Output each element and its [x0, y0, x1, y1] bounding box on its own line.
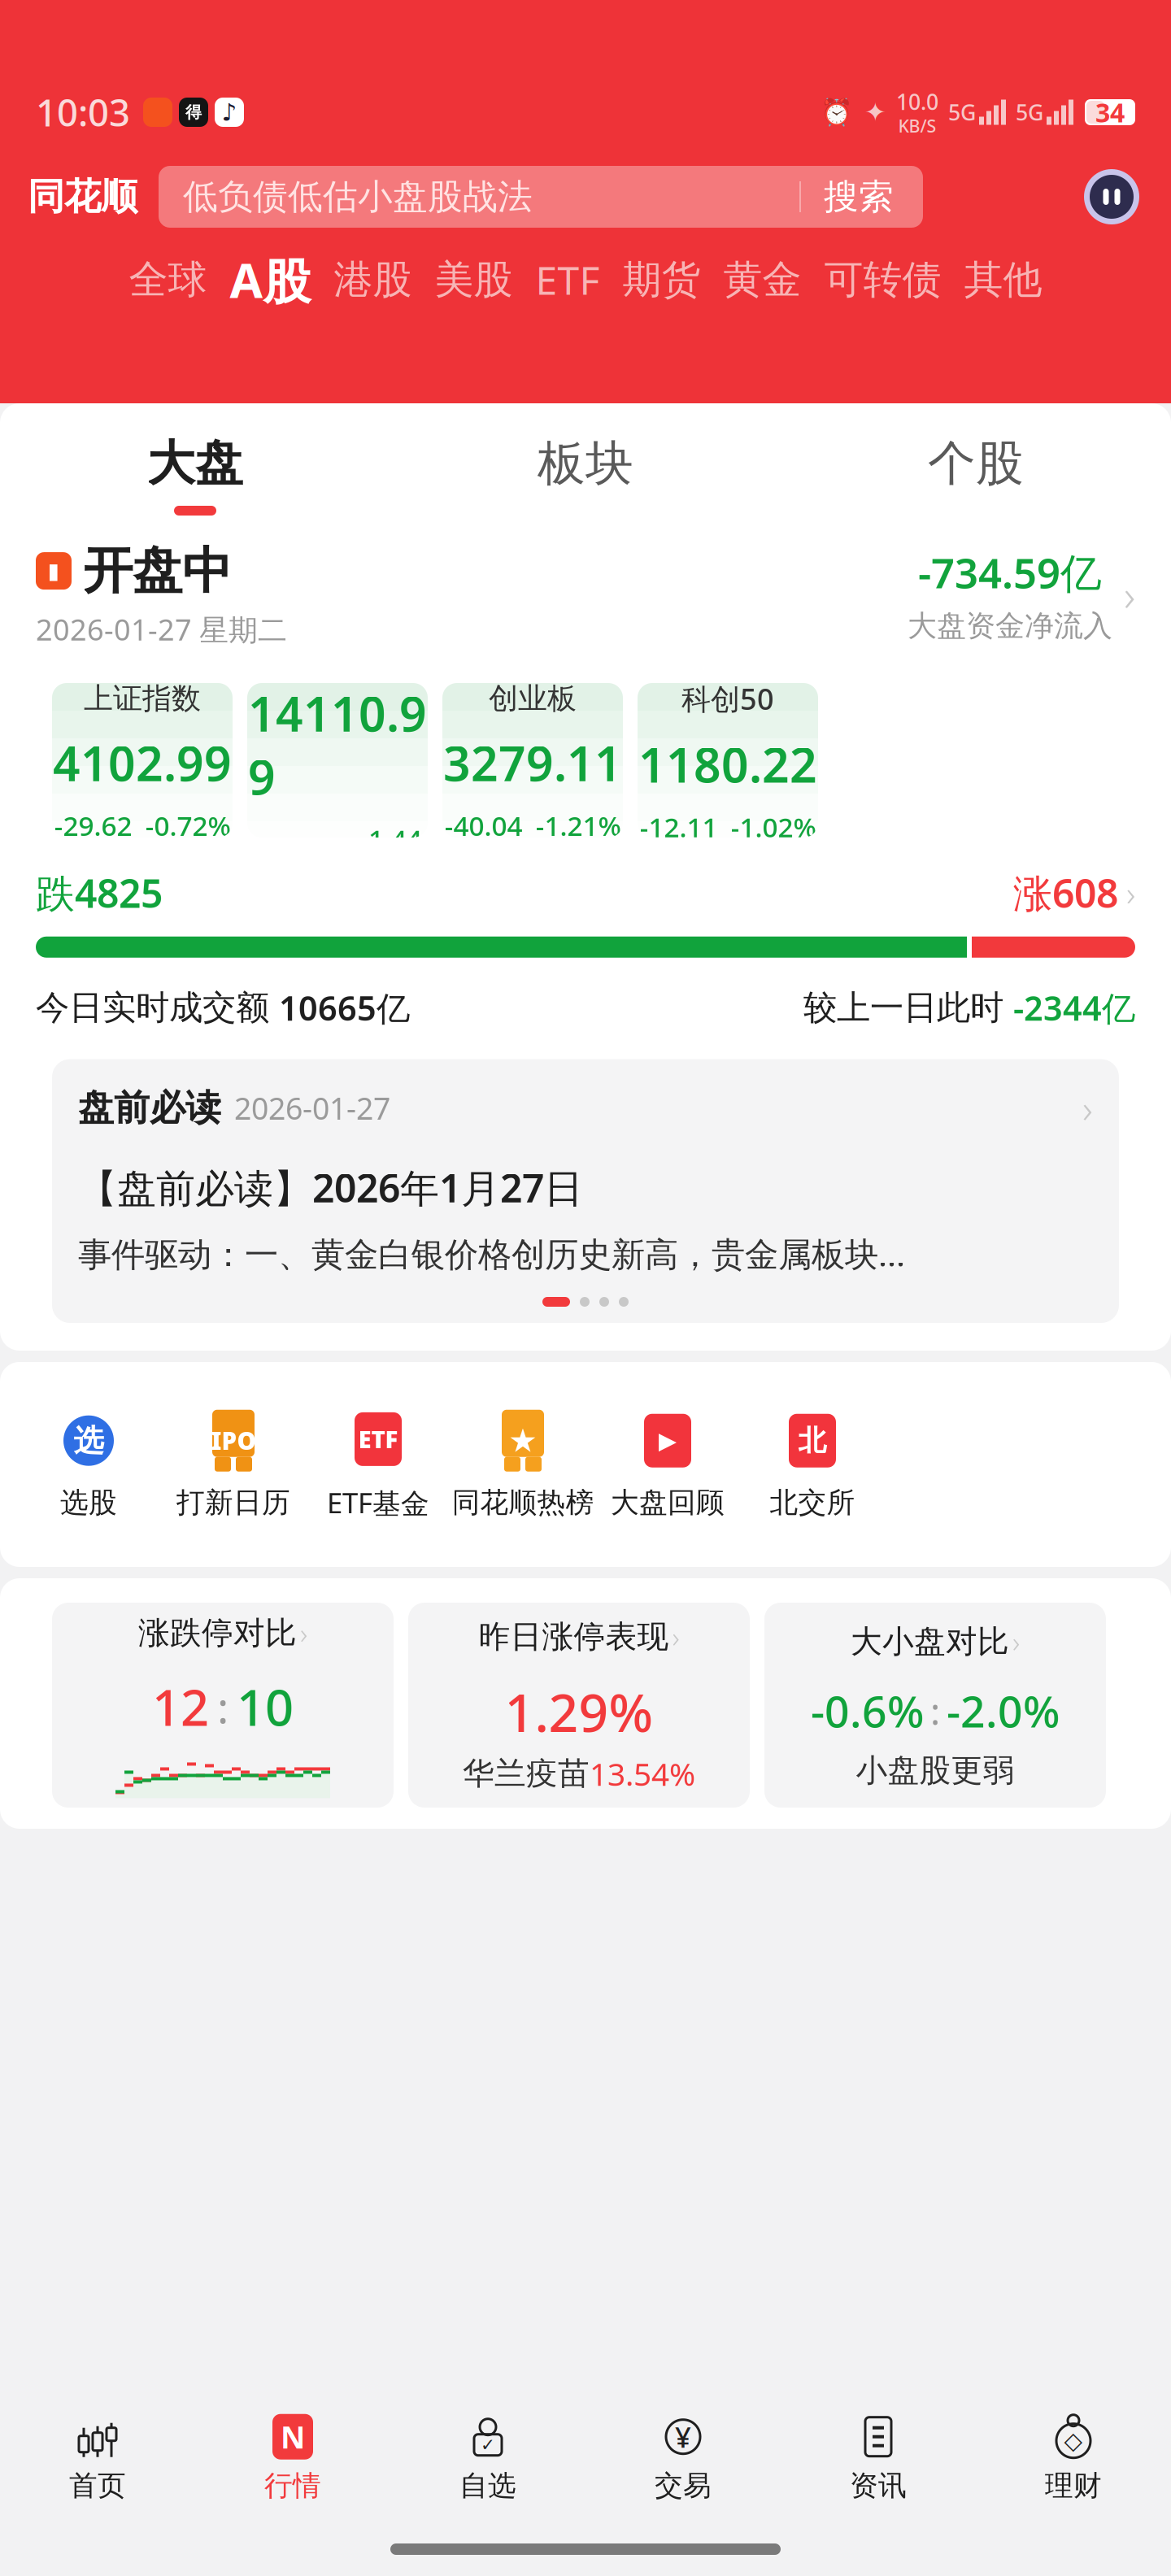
- button[interactable]: ▮: [0, 525, 1171, 664]
- staticText: 上证指数: [84, 680, 201, 716]
- button[interactable]: 昨日涨停表现: [408, 1603, 750, 1808]
- staticText: KB/S: [898, 114, 936, 137]
- staticText: ›: [1124, 566, 1135, 623]
- staticText: 4102.99: [53, 731, 232, 794]
- button[interactable]: 北: [740, 1409, 885, 1520]
- staticText: 个股: [928, 434, 1024, 493]
- staticText: -12.11: [640, 809, 718, 845]
- button[interactable]: 资讯: [781, 2409, 976, 2507]
- staticText: 全球: [129, 256, 207, 304]
- button[interactable]: 美股: [423, 242, 524, 317]
- button[interactable]: ✓: [390, 2409, 585, 2507]
- staticText: 期货: [623, 256, 701, 304]
- staticText: -1.02%: [731, 809, 816, 845]
- staticText: ✦: [864, 97, 886, 127]
- staticText: -2.0%: [947, 1682, 1060, 1740]
- staticText: 首页: [69, 2468, 126, 2503]
- staticText: A股: [230, 248, 311, 312]
- staticText: ›: [1012, 1623, 1020, 1660]
- staticText: 创业板: [489, 680, 577, 716]
- button[interactable]: 期货: [611, 242, 712, 317]
- staticText: 黄金: [723, 256, 801, 304]
- staticText: 【盘前必读】2026年1月27日: [78, 1161, 583, 1213]
- staticText: 事件驱动：一、黄金白银价格创历史新高，贵金属板块...: [78, 1231, 905, 1276]
- staticText: 10665亿: [279, 985, 410, 1030]
- button[interactable]: N: [195, 2409, 390, 2507]
- staticText: -1.21%: [535, 807, 621, 843]
- staticText: :: [217, 1678, 229, 1735]
- staticText: 开盘中: [83, 540, 232, 601]
- staticText: ▶: [658, 1427, 677, 1454]
- staticText: 资讯: [850, 2468, 907, 2503]
- button[interactable]: 创业板: [442, 683, 623, 838]
- button[interactable]: 跌4825: [0, 867, 1171, 958]
- button[interactable]: 全球: [118, 242, 218, 317]
- staticText: -0.6%: [811, 1682, 924, 1740]
- staticText: -2344亿: [1013, 985, 1135, 1030]
- button[interactable]: 深证成指: [247, 683, 428, 838]
- staticText: 得: [185, 102, 202, 122]
- staticText: ›: [1126, 870, 1135, 916]
- button[interactable]: ◇: [976, 2409, 1171, 2507]
- staticText: 13.54%: [590, 1753, 695, 1794]
- staticText: 34: [1095, 95, 1125, 130]
- button[interactable]: AI 助手: [1080, 165, 1143, 228]
- staticText: ◇: [1064, 2427, 1083, 2454]
- staticText: 大盘资金净流入: [908, 608, 1112, 644]
- staticText: 选: [74, 1422, 104, 1459]
- staticText: ›: [672, 1618, 679, 1655]
- button[interactable]: 上证指数: [52, 683, 233, 838]
- button[interactable]: IPO: [161, 1409, 306, 1520]
- staticText: 美股: [435, 256, 513, 304]
- button[interactable]: 可转债: [813, 242, 953, 317]
- button[interactable]: 科创50: [638, 683, 818, 838]
- button[interactable]: 大盘: [0, 403, 390, 525]
- staticText: 选股: [60, 1485, 117, 1520]
- button[interactable]: 黄金: [712, 242, 813, 317]
- button[interactable]: ★: [451, 1409, 595, 1520]
- staticText: ★: [508, 1422, 538, 1459]
- staticText: 小盘股更弱: [856, 1751, 1014, 1790]
- staticText: :: [930, 1686, 940, 1735]
- staticText: 板块: [538, 434, 633, 493]
- staticText: 大盘: [147, 434, 243, 493]
- button[interactable]: 港股: [322, 242, 423, 317]
- button[interactable]: 低负债低估小盘股战法: [159, 166, 923, 228]
- staticText: 14110.99: [248, 681, 427, 808]
- button[interactable]: ▶: [595, 1409, 740, 1520]
- staticText: 其他: [964, 256, 1042, 304]
- staticText: 10: [237, 1673, 294, 1740]
- button[interactable]: A股: [218, 242, 322, 317]
- staticText: 打新日历: [176, 1485, 290, 1520]
- button[interactable]: 盘前必读: [52, 1059, 1119, 1323]
- button[interactable]: ¥: [585, 2409, 781, 2507]
- button[interactable]: 涨跌停对比: [52, 1603, 394, 1808]
- button[interactable]: 个股: [781, 403, 1171, 525]
- button[interactable]: 首页: [0, 2409, 195, 2507]
- staticText: 12: [152, 1673, 209, 1740]
- staticText: ¥: [675, 2418, 691, 2455]
- staticText: 1.29%: [505, 1677, 653, 1746]
- staticText: ETF基金: [327, 1484, 429, 1521]
- button[interactable]: 板块: [390, 403, 781, 525]
- staticText: ▮: [48, 559, 60, 583]
- button[interactable]: 选: [16, 1409, 161, 1520]
- button[interactable]: 其他: [953, 242, 1053, 317]
- button[interactable]: ETF: [524, 242, 611, 317]
- staticText: ›: [300, 1614, 307, 1652]
- staticText: 昨日涨停表现: [479, 1617, 669, 1656]
- button[interactable]: 大小盘对比: [764, 1603, 1106, 1808]
- staticText: 可转债: [824, 256, 941, 304]
- staticText: 理财: [1045, 2468, 1102, 2503]
- button[interactable]: ETF: [306, 1407, 451, 1521]
- staticText: IPO: [211, 1425, 256, 1456]
- staticText: 北交所: [770, 1485, 855, 1520]
- staticText: ETF: [358, 1423, 398, 1455]
- staticText: -734.59亿: [918, 545, 1102, 600]
- staticText: 大盘回顾: [611, 1485, 725, 1520]
- staticText: 跌4825: [36, 867, 163, 919]
- staticText: 10.0: [896, 87, 938, 116]
- staticText: 华兰疫苗: [463, 1754, 590, 1793]
- staticText: 涨608: [1013, 867, 1118, 919]
- staticText: 3279.11: [443, 731, 622, 794]
